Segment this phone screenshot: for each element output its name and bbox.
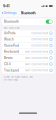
staticText: Not Connected (25, 50, 48, 53)
staticText: Connected (31, 44, 48, 47)
button[interactable]: Trackpad (2, 67, 54, 73)
button[interactable]: Keyboard (2, 49, 54, 55)
staticText: Not Connected (25, 63, 48, 66)
staticText: Bluetooth (20, 11, 35, 15)
button[interactable]: Bluetooth (2, 18, 54, 25)
button[interactable]: CX-5 (2, 61, 54, 67)
staticText: Keyboard (4, 50, 19, 54)
staticText: Connected (31, 38, 48, 41)
staticText: Watch (4, 38, 14, 41)
staticText: Not Connected (25, 69, 48, 72)
staticText: AirPods (4, 31, 16, 35)
button[interactable]: Watch (2, 36, 54, 42)
staticText: CX-5 (4, 62, 11, 66)
staticText: MY DEVICES (4, 27, 20, 30)
staticText: Bluetooth (4, 20, 19, 23)
staticText: Not Connected (25, 56, 48, 60)
button[interactable]: Beats (2, 55, 54, 61)
staticText: To pair an Apple Watch, use the Watch ap… (3, 76, 32, 81)
staticText: Settings (4, 11, 16, 15)
button[interactable]: AirPods (2, 30, 54, 36)
staticText: Trackpad (4, 69, 19, 72)
staticText: Beats (4, 56, 13, 60)
staticText: HomePod (4, 44, 19, 47)
staticText: 9:41 (3, 4, 10, 8)
button[interactable]: Settings (0, 9, 17, 17)
button[interactable]: HomePod (2, 43, 54, 49)
staticText: Connected (31, 32, 48, 35)
